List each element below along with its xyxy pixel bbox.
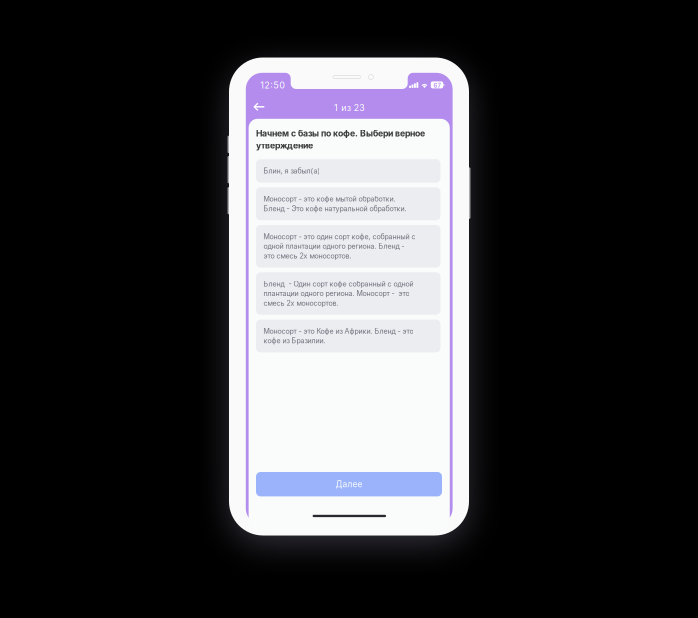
- staticText: Далее: [335, 479, 362, 489]
- staticText: смесь 2х моносортов.: [263, 299, 338, 307]
- button[interactable]: Моносорт - это Кофе из Африки. Бленд - э…: [256, 319, 440, 352]
- staticText: плантации одного региона. Моносорт - это: [263, 289, 409, 298]
- staticText: одной плантации одного региона. Бленд -: [263, 242, 404, 250]
- staticText: 67: [433, 82, 440, 89]
- staticText: Моносорт - это кофе мытой обработки.: [263, 195, 395, 203]
- staticText: Моносорт - это один сорт кофе, собранный…: [263, 232, 415, 241]
- button[interactable]: Бленд - Один сорт кофе собранный с одной: [256, 272, 440, 315]
- button[interactable]: Блин, я забыл(а): [256, 159, 440, 182]
- button[interactable]: Далее: [256, 472, 442, 496]
- button[interactable]: Back: [249, 98, 269, 115]
- staticText: 1 из 23: [334, 103, 364, 113]
- staticText: Моносорт - это Кофе из Африки. Бленд - э…: [263, 327, 413, 335]
- staticText: Бленд - Это кофе натуральной обработки.: [263, 204, 406, 213]
- staticText: Бленд - Один сорт кофе собранный с одной: [263, 280, 413, 288]
- staticText: Блин, я забыл(а): [263, 167, 320, 175]
- staticText: 12:50: [260, 80, 285, 91]
- staticText: это смесь 2х моносортов.: [263, 251, 351, 260]
- staticText: кофе из Бразилии.: [263, 336, 325, 345]
- staticText: Начнем с базы по кофе. Выбери верное утв…: [256, 128, 425, 151]
- button[interactable]: Моносорт - это кофе мытой обработки.: [256, 187, 440, 220]
- button[interactable]: Моносорт - это один сорт кофе, собранный…: [256, 225, 440, 267]
